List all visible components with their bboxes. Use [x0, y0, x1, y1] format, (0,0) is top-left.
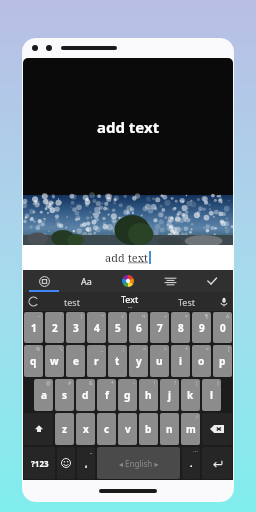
staticText: √ [121, 313, 125, 319]
staticText: w [50, 354, 59, 368]
other: Shift [34, 424, 44, 434]
button[interactable]: w [45, 345, 64, 377]
staticText: q [30, 354, 37, 368]
staticText: u [156, 354, 163, 368]
button[interactable]: Color [107, 270, 149, 292]
staticText: d [82, 388, 89, 402]
button[interactable]: u [150, 345, 169, 377]
staticText: # [68, 380, 72, 387]
button[interactable]: h [139, 379, 158, 411]
button[interactable]: Shift [24, 413, 53, 445]
button[interactable]: i [171, 345, 190, 377]
staticText: x [83, 422, 89, 436]
staticText: 7 [157, 321, 163, 335]
button[interactable]: c [97, 413, 116, 445]
button[interactable]: 7 [150, 312, 169, 343]
staticText: ◂ English ▸ [119, 458, 159, 469]
staticText: m [186, 422, 196, 436]
staticText: 5 [115, 321, 121, 335]
staticText: b [145, 422, 152, 436]
button[interactable]: Emoji [57, 447, 75, 479]
button[interactable]: 9 [192, 312, 211, 343]
button[interactable]: 3 [66, 312, 85, 343]
staticText: ⋯ [193, 448, 198, 454]
staticText: add text [97, 117, 160, 137]
staticText: 1 [31, 321, 37, 335]
staticText: ?123 [31, 458, 49, 469]
staticText: p [219, 354, 226, 368]
button[interactable]: j [160, 379, 179, 411]
staticText: 2 [52, 321, 58, 335]
button[interactable]: d [76, 379, 95, 411]
button[interactable]: Backspace [202, 413, 232, 445]
button[interactable]: q [24, 345, 43, 377]
button[interactable]: r [87, 345, 106, 377]
button[interactable]: e [66, 345, 85, 377]
other: Backspace [210, 425, 224, 433]
staticText: h [145, 388, 152, 402]
staticText: c [104, 422, 110, 436]
button[interactable]: t [108, 345, 127, 377]
button[interactable]: 8 [171, 312, 190, 343]
staticText: i [179, 354, 182, 368]
button[interactable]: g [118, 379, 137, 411]
staticText: ; [123, 346, 125, 353]
button[interactable]: Microphone [215, 292, 233, 311]
staticText: - [133, 380, 135, 387]
button[interactable]: a [34, 379, 53, 411]
button[interactable]: Text [101, 292, 158, 311]
button[interactable]: y [129, 345, 148, 377]
button[interactable]: . [182, 447, 200, 479]
staticText: • [102, 313, 104, 320]
button[interactable]: 6 [129, 312, 148, 343]
button[interactable]: s [55, 379, 74, 411]
staticText: _ [101, 346, 104, 353]
staticText: . [190, 457, 193, 469]
button[interactable]: ◂ English ▸ [97, 447, 180, 479]
button[interactable]: Test [158, 292, 215, 311]
button[interactable]: Voice typing toggle [23, 292, 43, 311]
button[interactable]: p [213, 345, 232, 377]
button[interactable]: l [202, 379, 221, 411]
button[interactable]: Enter [202, 447, 232, 479]
staticText: * [111, 380, 114, 387]
staticText: a [41, 388, 47, 402]
button[interactable]: b [139, 413, 158, 445]
staticText: 0 [220, 321, 226, 335]
other: Enter [212, 458, 223, 469]
button[interactable]: k [181, 379, 200, 411]
button[interactable]: n [160, 413, 179, 445]
staticText: ••• [128, 305, 133, 310]
staticText: test [64, 296, 80, 308]
button[interactable]: o [192, 345, 211, 377]
staticText: r [94, 354, 99, 368]
staticText: s [62, 388, 68, 402]
staticText: o [198, 354, 205, 368]
button[interactable]: Aa [65, 270, 107, 292]
button[interactable]: Done [191, 270, 233, 292]
button[interactable]: 5 [108, 312, 127, 343]
button[interactable]: ?123 [24, 447, 55, 479]
staticText: f [105, 388, 109, 402]
button[interactable]: Stickers [23, 270, 65, 292]
button[interactable]: 1 [24, 312, 43, 343]
staticText: % [36, 346, 41, 353]
button[interactable]: 0 [213, 312, 232, 343]
button[interactable]: 4 [87, 312, 106, 343]
button[interactable]: f [97, 379, 116, 411]
staticText: ( [196, 380, 198, 387]
staticText: _ [90, 448, 93, 455]
staticText: Text [121, 293, 139, 305]
staticText: l [210, 388, 213, 402]
button[interactable]: 2 [45, 312, 64, 343]
staticText: = [206, 346, 209, 353]
staticText: ¶ [205, 313, 209, 320]
button[interactable]: Align [149, 270, 191, 292]
button[interactable]: z [55, 413, 74, 445]
button[interactable]: , [77, 447, 95, 479]
staticText: add [105, 250, 128, 265]
button[interactable]: v [118, 413, 137, 445]
button[interactable]: x [76, 413, 95, 445]
button[interactable]: test [43, 292, 101, 311]
button[interactable]: m [181, 413, 200, 445]
